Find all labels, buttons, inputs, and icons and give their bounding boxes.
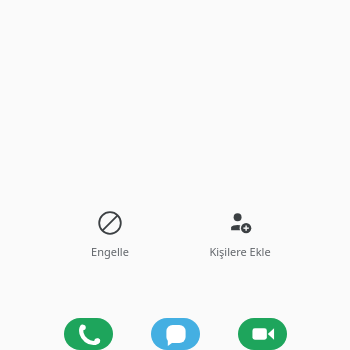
button[interactable]: Engelle <box>45 207 175 263</box>
button[interactable]: Görüntülü arama <box>238 318 287 350</box>
button[interactable]: Kişilere Ekle <box>175 207 305 263</box>
other: Engelle <box>98 211 122 235</box>
button[interactable]: Mesaj <box>151 318 200 350</box>
staticText: Engelle <box>91 244 129 259</box>
other: Kişilere Ekle <box>228 211 252 235</box>
button[interactable]: Ara <box>64 318 113 350</box>
staticText: Kişilere Ekle <box>209 244 271 259</box>
